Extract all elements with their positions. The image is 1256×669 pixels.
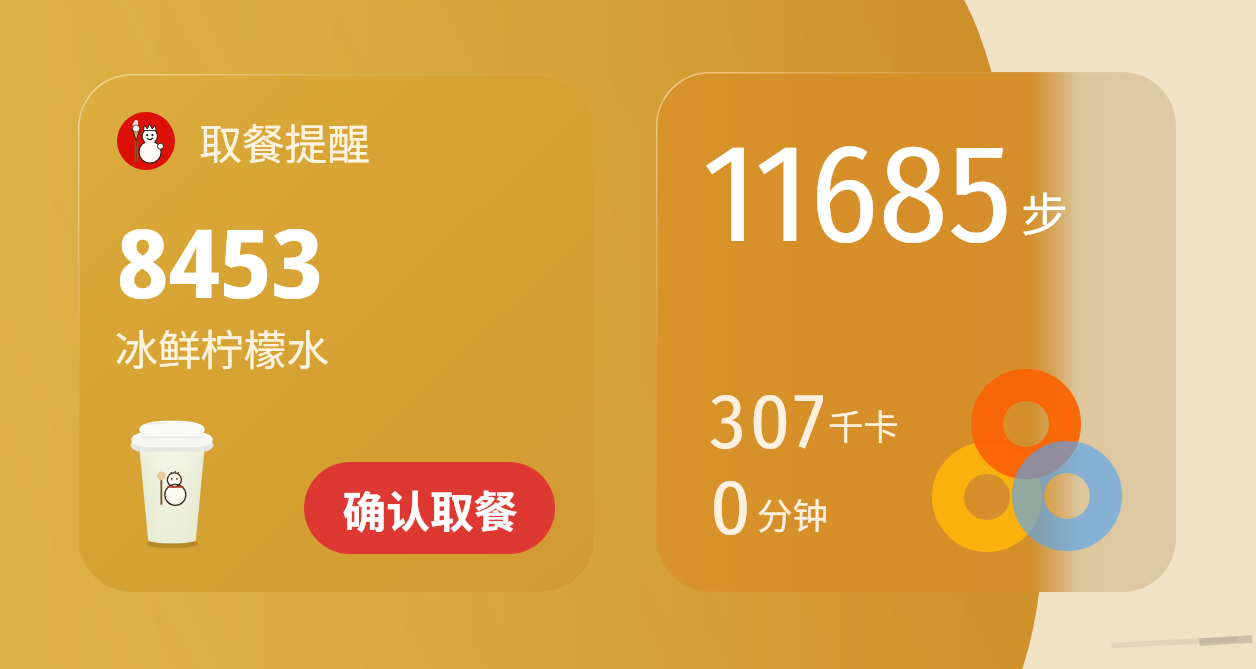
staticText: 11685 [703, 111, 1012, 278]
staticText: 冰鲜柠檬水 [115, 316, 329, 378]
button[interactable]: 11685 [656, 72, 1176, 592]
staticText: 取餐提醒 [199, 110, 371, 172]
staticText: 307 [710, 375, 830, 469]
staticText: 步 [1021, 177, 1068, 245]
staticText: 千卡 [828, 399, 900, 450]
staticText: 分钟 [757, 488, 829, 539]
other: Mixue brand logo [117, 112, 175, 170]
staticText: 8453 [117, 197, 323, 326]
button[interactable]: Mixue brand logo [78, 74, 594, 592]
button[interactable]: 确认取餐 [304, 462, 555, 554]
staticText: 确认取餐 [342, 477, 518, 540]
staticText: 0 [710, 461, 751, 555]
